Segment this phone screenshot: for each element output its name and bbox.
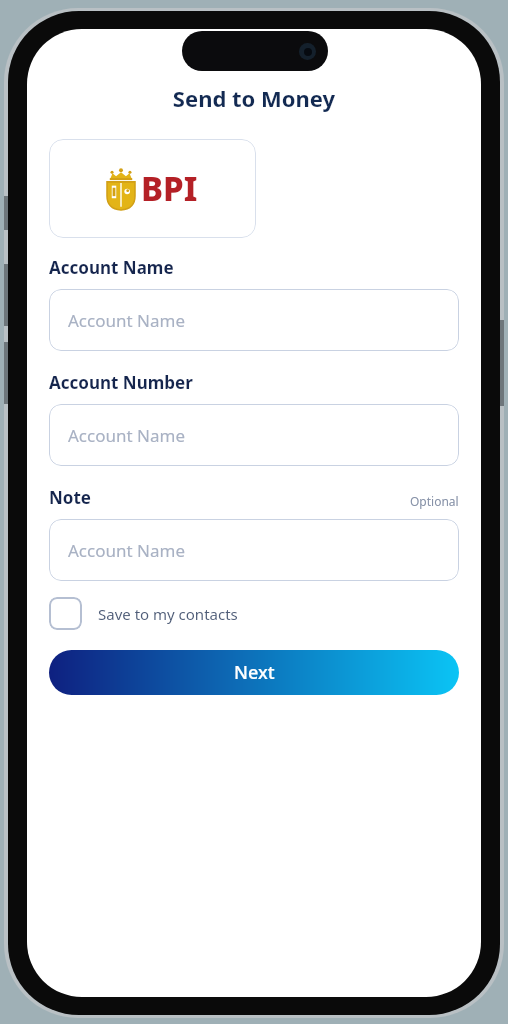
button[interactable]: Account Name [49, 404, 459, 466]
staticText: Next [234, 660, 275, 685]
button[interactable]: Save to my contacts [49, 597, 238, 630]
staticText: Account Name [68, 309, 185, 332]
staticText: Note [49, 486, 91, 509]
staticText: Save to my contacts [98, 604, 238, 624]
button[interactable]: Next [49, 650, 459, 695]
staticText: Send to Money [27, 83, 481, 113]
staticText: Account Number [49, 371, 193, 394]
staticText: BPI [141, 166, 198, 211]
staticText: Account Name [68, 424, 185, 447]
staticText: Account Name [68, 539, 185, 562]
button[interactable]: BPI [49, 139, 256, 238]
button[interactable]: Account Name [49, 289, 459, 351]
button[interactable]: Account Name [49, 519, 459, 581]
staticText: Optional [410, 493, 459, 509]
staticText: Account Name [49, 256, 174, 279]
